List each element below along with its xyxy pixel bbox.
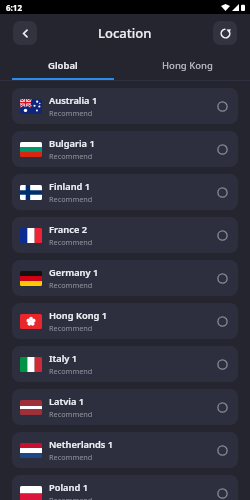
button[interactable]: Germany 1	[12, 260, 238, 296]
staticText: Finland 1	[49, 180, 91, 193]
staticText: Italy 1	[49, 352, 78, 365]
button[interactable]: France 2	[12, 217, 238, 253]
staticText: Latvia 1	[49, 395, 85, 408]
staticText: Recommend	[49, 452, 93, 462]
staticText: Recommend	[49, 495, 93, 500]
staticText: Recommend	[49, 151, 93, 161]
staticText: Australia 1	[49, 94, 98, 107]
staticText: Recommend	[49, 194, 93, 204]
button[interactable]: Australia 1	[12, 88, 238, 124]
button[interactable]: Hong Kong 1	[12, 303, 238, 339]
button[interactable]: Global	[0, 52, 125, 78]
staticText: Recommend	[49, 108, 93, 118]
staticText: Recommend	[49, 366, 93, 376]
button[interactable]: Finland 1	[12, 174, 238, 210]
staticText: Recommend	[49, 323, 93, 333]
button[interactable]: Netherlands 1	[12, 432, 238, 468]
staticText: 6:12	[6, 2, 22, 13]
staticText: Recommend	[49, 237, 93, 247]
staticText: France 2	[49, 223, 88, 236]
staticText: Recommend	[49, 409, 93, 419]
staticText: Germany 1	[49, 266, 99, 279]
staticText: Netherlands 1	[49, 438, 114, 451]
button[interactable]: Latvia 1	[12, 389, 238, 425]
staticText: Global	[48, 59, 78, 72]
staticText: Poland 1	[49, 481, 89, 494]
button[interactable]: Bulgaria 1	[12, 131, 238, 167]
button[interactable]: Hong Kong	[125, 52, 250, 78]
button[interactable]: Back	[13, 21, 37, 45]
staticText: Recommend	[49, 280, 93, 290]
button[interactable]: Italy 1	[12, 346, 238, 382]
staticText: Location	[98, 24, 152, 42]
staticText: Hong Kong 1	[49, 309, 108, 322]
staticText: Bulgaria 1	[49, 137, 95, 150]
staticText: Hong Kong	[162, 59, 213, 72]
button[interactable]: Refresh	[213, 21, 237, 45]
button[interactable]: Poland 1	[12, 475, 238, 500]
